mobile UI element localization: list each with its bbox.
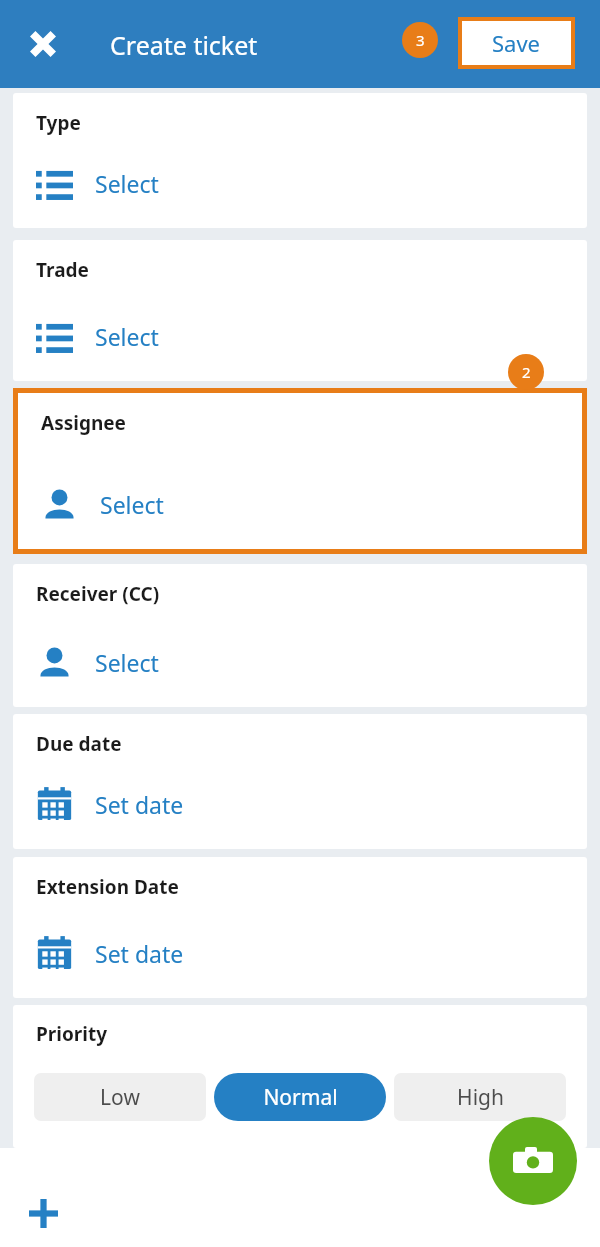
button[interactable]: Assignee — [18, 393, 582, 549]
staticText: Select — [95, 647, 159, 678]
button[interactable]: Receiver (CC) — [13, 564, 587, 707]
staticText: Save — [492, 28, 541, 58]
staticText: Priority — [36, 1021, 108, 1047]
button[interactable]: Due date — [13, 714, 587, 849]
button[interactable]: Trade — [13, 240, 587, 381]
button[interactable]: Take photo — [489, 1117, 577, 1205]
staticText: 3 — [416, 30, 425, 50]
button[interactable]: Add attachment — [21, 1191, 65, 1235]
staticText: Trade — [36, 257, 89, 283]
button[interactable]: Low — [34, 1073, 206, 1121]
staticText: Select — [95, 168, 159, 199]
staticText: Set date — [95, 789, 184, 820]
staticText: Create ticket — [110, 28, 258, 62]
staticText: Set date — [95, 938, 184, 969]
staticText: 2 — [522, 362, 531, 382]
staticText: Extension Date — [36, 874, 179, 900]
staticText: Type — [36, 110, 81, 136]
button[interactable]: Close — [17, 18, 69, 70]
staticText: Normal — [263, 1083, 338, 1112]
staticText: Receiver (CC) — [36, 581, 160, 607]
staticText: High — [457, 1083, 504, 1112]
staticText: Low — [100, 1083, 140, 1112]
staticText: Select — [95, 321, 159, 352]
staticText: Select — [100, 489, 164, 520]
button[interactable]: Save — [462, 21, 571, 65]
button[interactable]: High — [394, 1073, 566, 1121]
button[interactable]: Extension Date — [13, 857, 587, 998]
staticText: Assignee — [41, 410, 126, 436]
button[interactable]: Type — [13, 93, 587, 228]
button[interactable]: Normal — [214, 1073, 386, 1121]
staticText: Due date — [36, 731, 122, 757]
